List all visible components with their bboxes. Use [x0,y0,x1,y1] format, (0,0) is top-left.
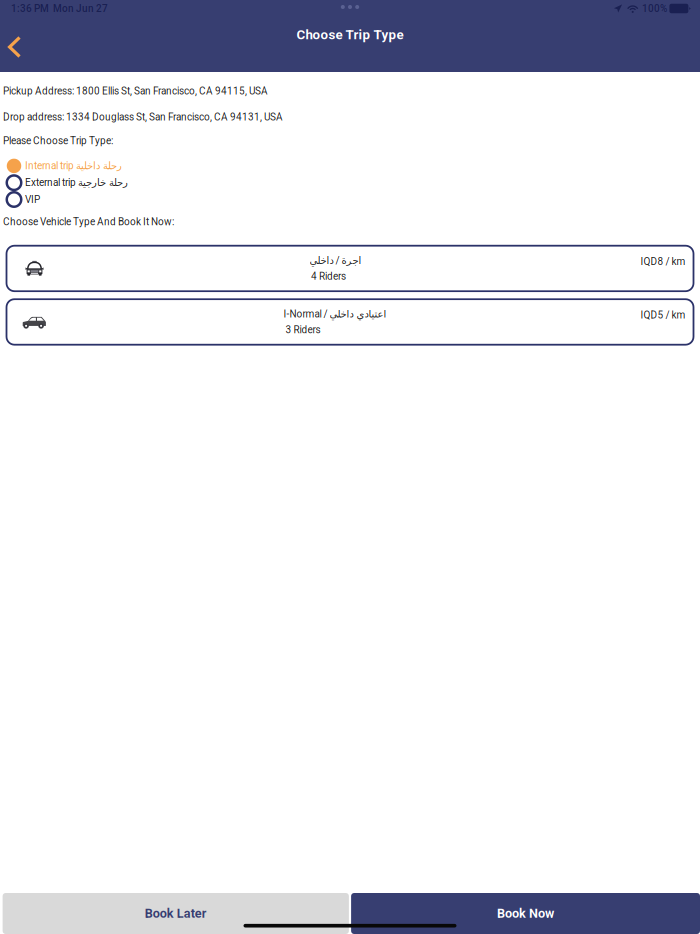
staticText: اجرة / داخلي [309,255,361,266]
button[interactable]: اجرة / داخلي [6,246,693,291]
staticText: Book Later [145,906,207,921]
staticText: Please Choose Trip Type: [3,135,113,147]
button[interactable]: External trip رحلة خارجية [3,174,700,191]
staticText: Book Now [497,906,554,921]
staticText: IQD5 / km [640,309,685,321]
staticText: 3 Riders [285,324,320,336]
button[interactable]: VIP [3,191,700,208]
staticText: Pickup Address: 1800 Ellis St, San Franc… [3,85,268,97]
button[interactable]: Internal trip رحلة داخلية [3,157,700,174]
staticText: VIP [25,194,40,205]
staticText: Mon Jun 27 [49,3,108,14]
staticText: 4 Riders [311,270,346,282]
staticText: Drop address: 1334 Douglass St, San Fran… [3,111,283,123]
staticText: I-Normal / اعتيادي داخلي [283,308,386,320]
staticText: 1:36 PM [11,3,49,14]
button[interactable]: Book Later [3,893,349,934]
staticText: Internal trip رحلة داخلية [25,160,122,172]
staticText: IQD8 / km [640,256,685,267]
button[interactable]: I-Normal / اعتيادي داخلي [6,299,693,345]
staticText: 100% [642,3,667,14]
staticText: Choose Trip Type [296,27,403,43]
staticText: External trip رحلة خارجية [25,177,128,188]
button[interactable]: Book Now [351,893,700,934]
staticText: Choose Vehicle Type And Book It Now: [3,216,174,228]
staticText [345,269,347,281]
button[interactable]: Back [0,28,34,65]
